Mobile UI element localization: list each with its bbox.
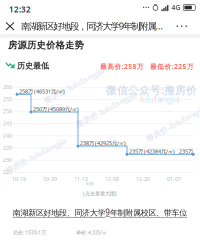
staticText: 245 [3, 120, 12, 127]
staticText: 微信公众号:撸房价 [106, 83, 197, 97]
staticText: 238万 (42925元/㎡) [80, 139, 126, 147]
staticText: 单价: 4.3万/㎡ [76, 229, 107, 236]
staticText: 最低价:225万 [150, 62, 194, 71]
button[interactable]: (点击查看大图) [0, 189, 200, 198]
staticText: 235万 (42384元/㎡) [129, 148, 175, 155]
staticText: 12-20 [136, 175, 150, 183]
staticText: 撸房价-lulufangjia [2, 150, 70, 161]
button[interactable]: More options [175, 18, 191, 34]
staticText: 房源历史价格走势 [8, 39, 83, 51]
staticText: 4G [172, 3, 181, 12]
staticText: 255 [3, 96, 12, 103]
staticText: 12:32 [9, 4, 31, 15]
staticText: 260 [3, 83, 12, 91]
staticText: 250万 (45089元/㎡) [33, 105, 79, 113]
staticText: 撸房价-lulufangjia [142, 118, 200, 129]
staticText: 235万 [179, 148, 193, 155]
staticText: 撸房价-lulufangjia [72, 104, 140, 115]
button[interactable]: 南湖新区好地段、同济大学9年制附属校区、带车位 [0, 207, 200, 236]
button[interactable]: Close [1, 17, 19, 35]
staticText: 最高价:258万 [100, 62, 144, 71]
staticText: 南湖新区好地段，同济大学9年制附属… [21, 20, 163, 32]
staticText: 10-19 [12, 175, 26, 183]
staticText: 撸房价-lulufangjia [40, 80, 108, 91]
staticText: 12-08 [105, 175, 119, 183]
staticText: 235 [3, 144, 12, 151]
staticText: 258万 (46531元/㎡) [19, 88, 65, 95]
staticText: 01-07 [167, 175, 181, 183]
staticText: 11-12 [74, 175, 88, 183]
staticText: 历史最低 [17, 61, 49, 71]
staticText: 240 [3, 132, 12, 139]
staticText: 时间 [86, 181, 94, 186]
staticText: (点击查看大图) [83, 190, 117, 197]
staticText: 10-29 [43, 175, 57, 183]
staticText: 250 [3, 108, 12, 115]
staticText: 南湖新区好地段、同济大学9年制附属校区、带车位 [13, 207, 187, 218]
staticText: lulufangjia [140, 94, 179, 105]
staticText: 225 [3, 168, 12, 176]
staticText: 总价: 1570.1万 [13, 229, 46, 236]
staticText: 230 [3, 156, 12, 163]
